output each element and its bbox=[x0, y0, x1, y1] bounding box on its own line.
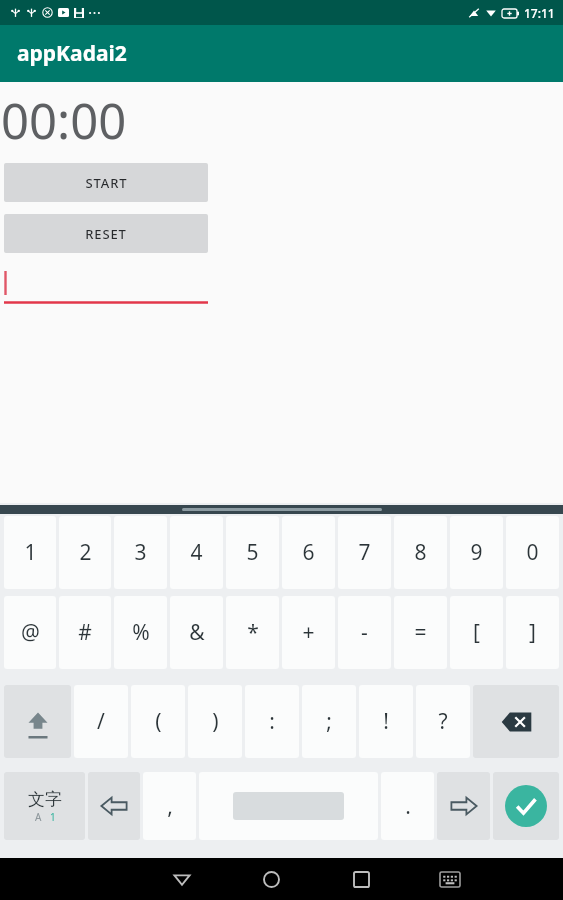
staticText: - bbox=[361, 618, 368, 647]
button[interactable]: Space bbox=[199, 772, 378, 840]
staticText: 7 bbox=[358, 538, 371, 567]
staticText: 00:00 bbox=[1, 87, 127, 154]
button[interactable]: 0 bbox=[506, 516, 559, 589]
button[interactable]: Switch input mode bbox=[4, 772, 85, 840]
button[interactable]: [ bbox=[450, 596, 503, 669]
staticText: 17:11 bbox=[524, 5, 555, 21]
button[interactable]: Move cursor right bbox=[437, 772, 490, 840]
button[interactable]: Back bbox=[160, 858, 204, 900]
button[interactable]: . bbox=[381, 772, 434, 840]
button[interactable]: 4 bbox=[170, 516, 223, 589]
button[interactable]: % bbox=[114, 596, 167, 669]
staticText: : bbox=[269, 707, 275, 736]
button[interactable]: ( bbox=[131, 685, 185, 758]
button[interactable]: & bbox=[170, 596, 223, 669]
staticText: 5 bbox=[246, 538, 259, 567]
button[interactable]: : bbox=[245, 685, 299, 758]
button[interactable]: + bbox=[282, 596, 335, 669]
staticText: 4 bbox=[190, 538, 203, 567]
button[interactable]: 1 bbox=[4, 516, 56, 589]
staticText: + bbox=[302, 618, 315, 647]
staticText: 3 bbox=[134, 538, 147, 567]
button[interactable]: 9 bbox=[450, 516, 503, 589]
staticText: 9 bbox=[470, 538, 483, 567]
staticText: / bbox=[97, 707, 105, 736]
button[interactable]: Shift bbox=[4, 685, 71, 758]
staticText: RESET bbox=[85, 225, 127, 243]
button[interactable]: ! bbox=[359, 685, 413, 758]
staticText: 0 bbox=[526, 538, 539, 567]
button[interactable]: ; bbox=[302, 685, 356, 758]
button[interactable]: Hide keyboard bbox=[428, 858, 472, 900]
staticText: @ bbox=[21, 618, 40, 647]
staticText: 1 bbox=[50, 810, 56, 824]
staticText: ! bbox=[383, 707, 389, 736]
staticText: 6 bbox=[302, 538, 315, 567]
staticText: 文字 bbox=[28, 789, 62, 810]
staticText: . bbox=[405, 792, 411, 821]
button[interactable]: RESET bbox=[4, 214, 208, 253]
button[interactable]: # bbox=[59, 596, 111, 669]
button[interactable]: ] bbox=[506, 596, 559, 669]
button[interactable]: 5 bbox=[226, 516, 279, 589]
staticText: START bbox=[85, 174, 128, 192]
staticText: & bbox=[189, 618, 205, 647]
button[interactable]: ? bbox=[416, 685, 470, 758]
button[interactable]: Backspace bbox=[473, 685, 559, 758]
button[interactable]: - bbox=[338, 596, 391, 669]
button[interactable]: Home bbox=[249, 858, 293, 900]
button[interactable]: Recent apps bbox=[339, 858, 383, 900]
button[interactable]: @ bbox=[4, 596, 56, 669]
button[interactable]: Enter bbox=[493, 772, 559, 840]
staticText: 2 bbox=[79, 538, 92, 567]
button[interactable]: ) bbox=[188, 685, 242, 758]
staticText: ( bbox=[155, 707, 162, 736]
staticText: 8 bbox=[414, 538, 427, 567]
staticText: * bbox=[247, 618, 259, 647]
staticText: [ bbox=[473, 618, 480, 647]
staticText: ; bbox=[326, 707, 332, 736]
button[interactable]: Move cursor left bbox=[88, 772, 140, 840]
staticText: ? bbox=[438, 707, 448, 736]
staticText: % bbox=[132, 618, 150, 647]
button[interactable]: START bbox=[4, 163, 208, 202]
button[interactable]: 2 bbox=[59, 516, 111, 589]
staticText: appKadai2 bbox=[17, 39, 127, 68]
button[interactable]: 3 bbox=[114, 516, 167, 589]
button[interactable]: , bbox=[143, 772, 196, 840]
button[interactable]: 6 bbox=[282, 516, 335, 589]
button[interactable]: 8 bbox=[394, 516, 447, 589]
staticText: , bbox=[167, 792, 173, 821]
button[interactable] bbox=[4, 268, 208, 304]
button[interactable]: / bbox=[74, 685, 128, 758]
button[interactable]: = bbox=[394, 596, 447, 669]
staticText: 1 bbox=[24, 538, 37, 567]
staticText: = bbox=[414, 618, 427, 647]
button[interactable]: 7 bbox=[338, 516, 391, 589]
staticText: ] bbox=[529, 618, 536, 647]
button[interactable]: * bbox=[226, 596, 279, 669]
staticText: A bbox=[35, 810, 42, 824]
staticText: # bbox=[78, 618, 92, 647]
staticText: ) bbox=[212, 707, 219, 736]
